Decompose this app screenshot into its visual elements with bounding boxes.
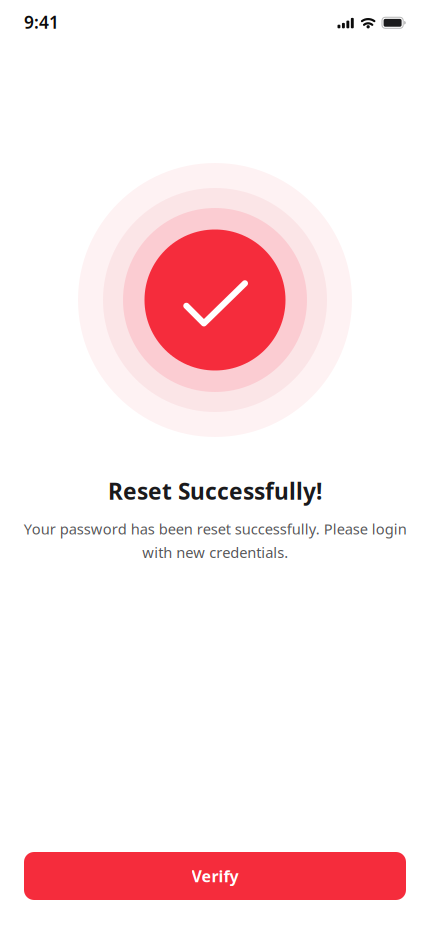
staticText: Verify [191, 865, 238, 887]
staticText: 9:41 [24, 10, 59, 33]
staticText: Reset Successfully! [108, 476, 322, 506]
button[interactable]: Verify [24, 852, 406, 900]
staticText: Your password has been reset successfull… [23, 519, 406, 562]
